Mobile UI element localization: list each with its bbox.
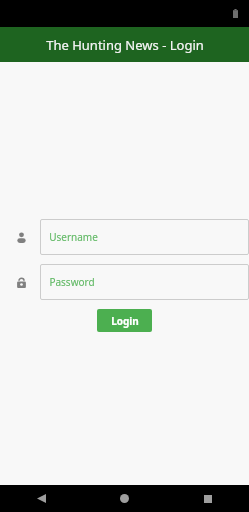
- button[interactable]: Password: [40, 264, 249, 300]
- staticText: Login: [111, 314, 139, 328]
- button[interactable]: Home: [83, 485, 166, 512]
- staticText: Password: [49, 275, 95, 289]
- button[interactable]: Back: [0, 485, 83, 512]
- button[interactable]: Recent apps: [166, 485, 249, 512]
- staticText: The Hunting News - Login: [46, 36, 204, 54]
- staticText: Username: [49, 230, 98, 244]
- button[interactable]: Login: [97, 309, 152, 332]
- button[interactable]: Username: [40, 219, 249, 255]
